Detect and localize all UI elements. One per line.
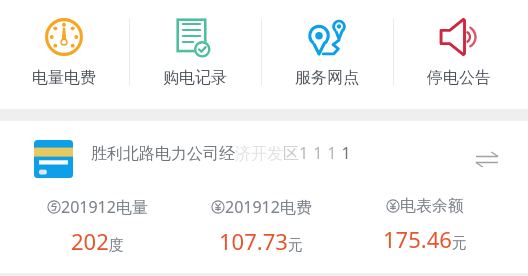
staticText: 停电公告 xyxy=(427,68,491,88)
staticText: 服务网点 xyxy=(295,68,359,88)
button[interactable]: 201912电费 xyxy=(179,195,343,273)
button[interactable]: 停电公告 xyxy=(393,0,525,109)
staticText: 电量电费 xyxy=(32,68,96,88)
button[interactable]: 201912电量 xyxy=(15,195,179,273)
staticText: 201912电费 xyxy=(225,196,312,218)
staticText: 175.46元 xyxy=(383,224,467,254)
staticText: 胜利北路电力公司经济开发区1111 xyxy=(91,142,351,164)
button[interactable]: 购电记录 xyxy=(129,0,261,109)
staticText: 107.73元 xyxy=(219,226,303,256)
staticText: 电表余额 xyxy=(400,196,464,216)
staticText: 购电记录 xyxy=(163,68,227,88)
button[interactable]: 电量电费 xyxy=(0,0,129,109)
button[interactable]: 服务网点 xyxy=(261,0,393,109)
staticText: 202度 xyxy=(71,226,124,256)
button[interactable]: 胜利北路电力公司经济开发区1111 xyxy=(0,121,528,195)
staticText: 201912电量 xyxy=(61,196,148,218)
button[interactable]: 电表余额 xyxy=(343,195,507,273)
button[interactable]: 切换账户 xyxy=(469,141,505,177)
